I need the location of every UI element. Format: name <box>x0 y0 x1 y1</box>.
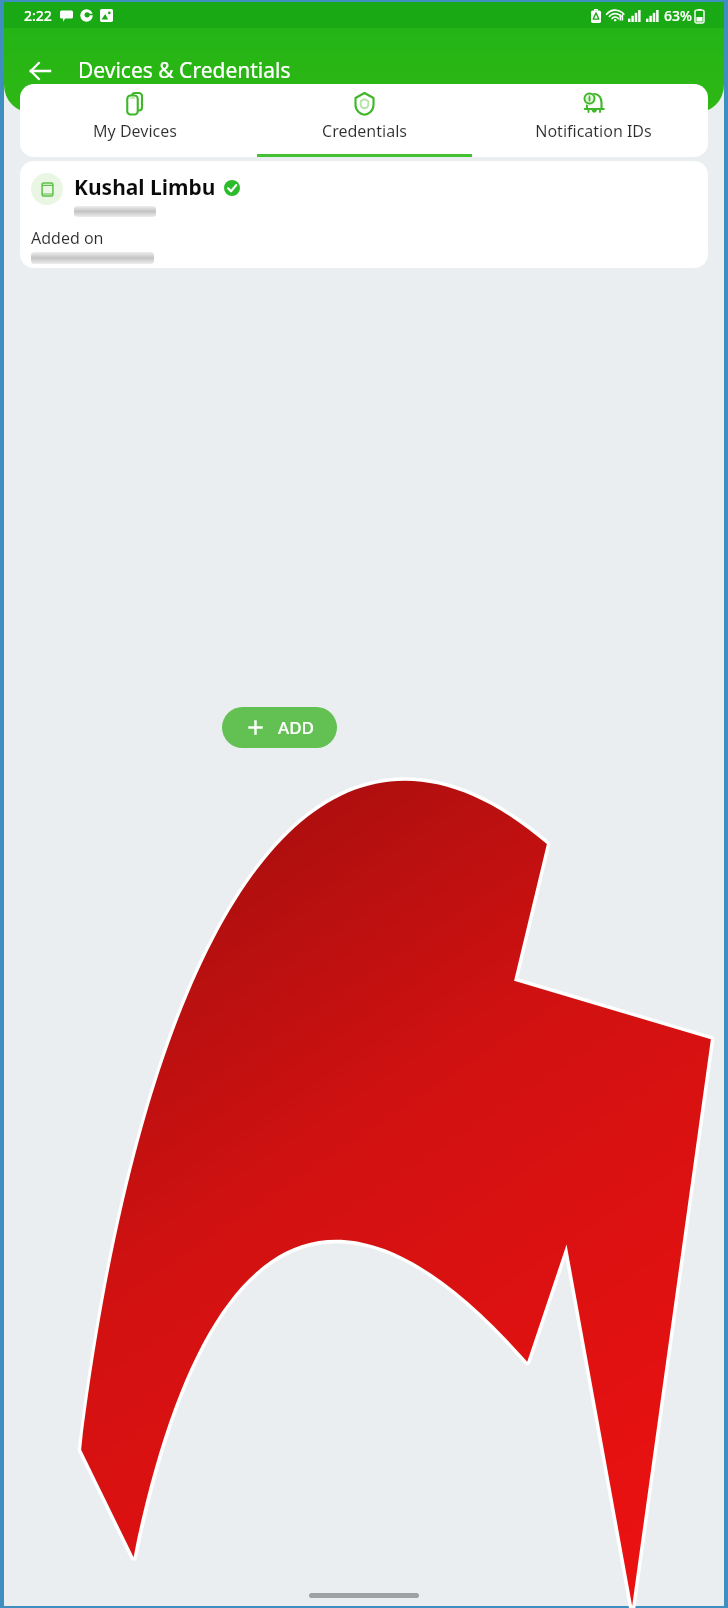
staticText: 2:22 <box>24 6 52 25</box>
button[interactable]: Notification IDs <box>479 84 708 157</box>
staticText: Devices & Credentials <box>78 56 291 85</box>
button[interactable]: ADD <box>222 707 337 748</box>
staticText: 63% <box>664 6 692 25</box>
button[interactable]: Kushal Limbu <box>20 161 708 268</box>
staticText: Added on <box>31 227 104 249</box>
button[interactable]: My Devices <box>20 84 250 157</box>
button[interactable]: Back <box>16 47 64 95</box>
button[interactable]: Credentials <box>250 84 479 157</box>
staticText: ADD <box>278 716 314 739</box>
staticText: Kushal Limbu <box>74 173 216 202</box>
staticText: Notification IDs <box>535 120 652 142</box>
staticText: Credentials <box>322 120 407 142</box>
staticText: My Devices <box>93 120 177 142</box>
